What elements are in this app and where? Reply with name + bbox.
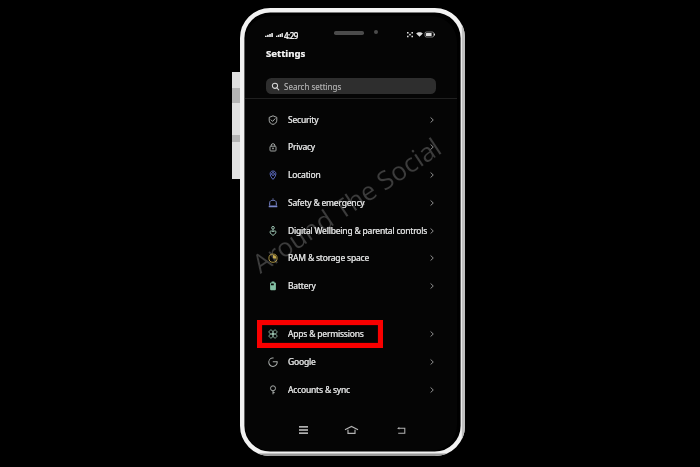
staticText: Settings (266, 47, 306, 60)
button[interactable]: Home (341, 420, 361, 440)
staticText: RAM & storage space (288, 252, 370, 264)
button[interactable]: Security (245, 106, 457, 134)
staticText: Safety & emergency (288, 197, 365, 209)
staticText: Battery (288, 280, 316, 292)
staticText: Digital Wellbeing & parental controls (288, 225, 428, 237)
button[interactable]: Back (391, 420, 411, 440)
staticText: 4:29 (284, 30, 298, 41)
staticText: Around The Social (245, 129, 447, 280)
button[interactable]: Accounts & sync (245, 376, 457, 404)
button[interactable]: Recent apps (293, 420, 313, 440)
staticText: Apps & permissions (288, 328, 364, 340)
staticText: Search settings (284, 81, 342, 92)
button[interactable]: Search settings (266, 78, 436, 94)
button[interactable]: Privacy (245, 133, 457, 161)
button[interactable]: Battery (245, 272, 457, 300)
button[interactable]: Apps & permissions (245, 320, 457, 348)
staticText: Security (288, 114, 319, 126)
staticText: Google (288, 356, 316, 368)
staticText: Accounts & sync (288, 384, 350, 396)
staticText: Location (288, 169, 321, 181)
button[interactable]: Safety & emergency (245, 189, 457, 217)
button[interactable]: Location (245, 161, 457, 189)
button[interactable]: RAM & storage space (245, 244, 457, 272)
button[interactable]: Digital Wellbeing & parental controls (245, 217, 457, 245)
button[interactable]: Google (245, 348, 457, 376)
staticText: Privacy (288, 141, 316, 153)
